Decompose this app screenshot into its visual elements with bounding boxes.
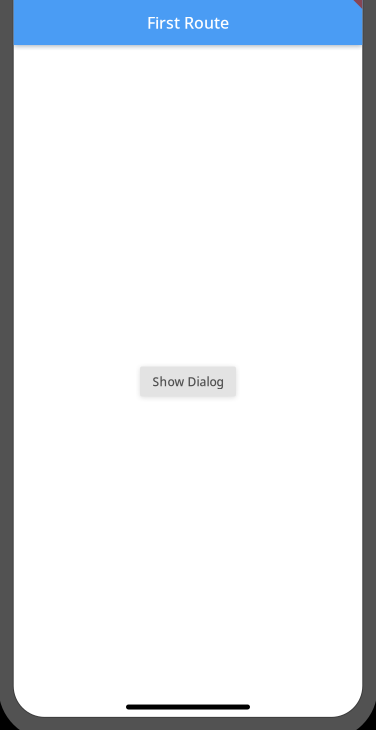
staticText: Show Dialog: [152, 373, 223, 389]
button[interactable]: Show Dialog: [140, 366, 236, 396]
staticText: First Route: [147, 12, 229, 33]
